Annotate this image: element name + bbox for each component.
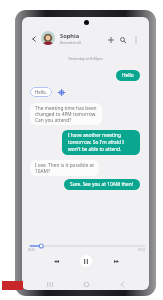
staticText: Yesterday at 8:30pm <box>22 56 149 61</box>
button[interactable]: Hello. <box>30 87 52 97</box>
button[interactable]: Hello <box>116 70 140 81</box>
button[interactable]: The meeting time has been changed to 4PM… <box>30 103 102 125</box>
button[interactable]: Sure. See you at 10AM then! <box>64 179 140 190</box>
button[interactable]: Rewind <box>49 254 63 268</box>
button[interactable]: Pause <box>80 255 92 267</box>
button[interactable]: Fast forward <box>109 254 123 268</box>
button[interactable]: Recent apps <box>44 278 56 290</box>
button[interactable]: Add <box>105 34 116 45</box>
staticText: I have another meeting tomorrow. So I'm … <box>68 132 124 153</box>
staticText: I see. Then is it possible at 10AM? <box>35 162 94 174</box>
button[interactable]: Search <box>117 34 128 45</box>
button[interactable]: I see. Then is it possible at 10AM? <box>30 160 99 176</box>
staticText: Recorded call <box>60 40 81 44</box>
staticText: 00:06 <box>28 248 35 252</box>
button[interactable]: Back <box>116 278 128 290</box>
button[interactable]: Back <box>28 33 40 45</box>
button[interactable]: More options <box>130 34 141 45</box>
button[interactable]: I have another meeting tomorrow. So I'm … <box>62 130 140 155</box>
staticText: Hello. <box>35 89 47 95</box>
staticText: The meeting time has been changed to 4PM… <box>35 105 97 123</box>
staticText: Hello <box>122 72 134 79</box>
staticText: 01:12 <box>138 248 145 252</box>
staticText: Sure. See you at 10AM then! <box>70 181 134 188</box>
button[interactable]: Play voice message <box>57 88 66 97</box>
staticText: Sophia <box>60 32 80 40</box>
button[interactable]: Home <box>80 278 92 290</box>
